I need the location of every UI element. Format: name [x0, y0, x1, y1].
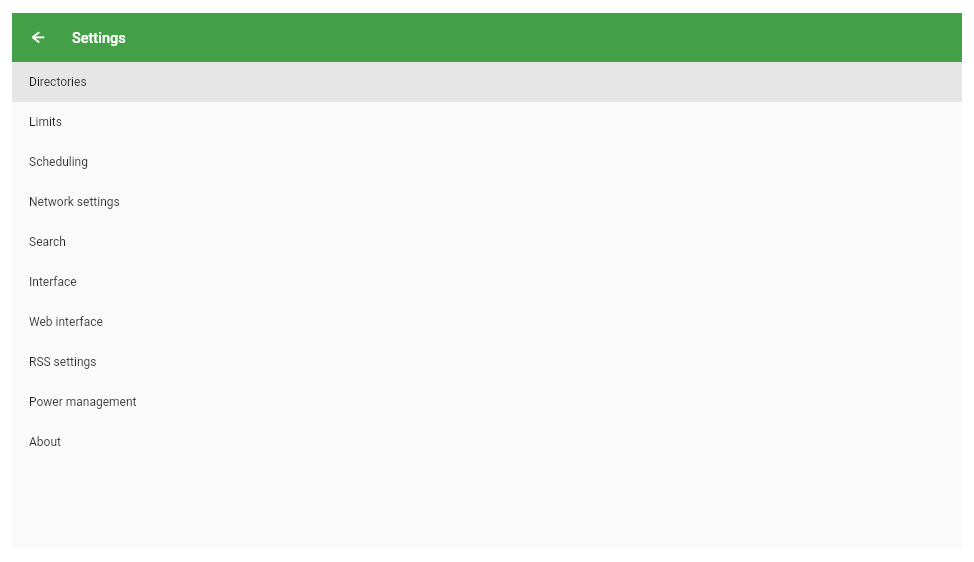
button[interactable]: Back	[12, 13, 64, 62]
staticText: Limits	[29, 115, 62, 129]
button[interactable]: Search	[12, 222, 962, 262]
button[interactable]: Power management	[12, 382, 962, 422]
staticText: Network settings	[29, 195, 120, 209]
button[interactable]: Scheduling	[12, 142, 962, 182]
button[interactable]: Limits	[12, 102, 962, 142]
button[interactable]: RSS settings	[12, 342, 962, 382]
staticText: Scheduling	[29, 155, 88, 169]
button[interactable]: Network settings	[12, 182, 962, 222]
staticText: Web interface	[29, 315, 103, 329]
staticText: RSS settings	[29, 355, 97, 369]
staticText: Settings	[72, 30, 126, 47]
button[interactable]: About	[12, 422, 962, 462]
staticText: Interface	[29, 275, 77, 289]
staticText: Power management	[29, 395, 137, 409]
button[interactable]: Interface	[12, 262, 962, 302]
button[interactable]: Web interface	[12, 302, 962, 342]
staticText: About	[29, 435, 61, 449]
staticText: Search	[29, 235, 66, 249]
staticText: Directories	[29, 75, 87, 89]
button[interactable]: Directories	[12, 62, 962, 102]
